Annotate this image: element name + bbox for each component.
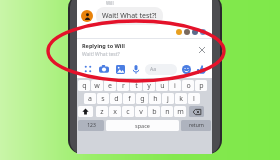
staticText: s: [101, 94, 105, 104]
staticText: c: [126, 107, 130, 117]
button[interactable]: t: [130, 80, 142, 91]
button[interactable]: Send like: [194, 62, 208, 76]
staticText: w: [94, 81, 100, 91]
staticText: 123: [87, 122, 96, 129]
button[interactable]: x: [109, 106, 121, 117]
staticText: y: [147, 81, 151, 91]
button[interactable]: e: [104, 80, 116, 91]
button[interactable]: Reaction: [176, 29, 182, 35]
staticText: Will: [106, 0, 114, 6]
staticText: o: [186, 81, 191, 91]
staticText: b: [152, 107, 157, 117]
staticText: u: [160, 81, 165, 91]
button[interactable]: n: [161, 106, 173, 117]
button[interactable]: m: [174, 106, 186, 117]
button[interactable]: u: [156, 80, 168, 91]
button[interactable]: d: [110, 93, 122, 104]
button[interactable]: Voice message: [129, 62, 143, 76]
staticText: Wait! What test?: [82, 51, 120, 58]
button[interactable]: a: [84, 93, 96, 104]
staticText: e: [108, 81, 112, 91]
button[interactable]: f: [123, 93, 135, 104]
staticText: v: [139, 107, 143, 117]
button[interactable]: o: [182, 80, 194, 91]
button[interactable]: y: [143, 80, 155, 91]
button[interactable]: p: [195, 80, 207, 91]
staticText: space: [135, 122, 150, 129]
button[interactable]: l: [188, 93, 200, 104]
staticText: n: [165, 107, 170, 117]
button[interactable]: s: [97, 93, 109, 104]
staticText: l: [193, 94, 195, 104]
button[interactable]: Shift: [78, 106, 93, 117]
staticText: m: [177, 107, 184, 117]
button[interactable]: q: [78, 80, 90, 91]
button[interactable]: j: [162, 93, 174, 104]
staticText: j: [167, 94, 169, 104]
button[interactable]: Wait! What test?!: [96, 7, 163, 25]
staticText: r: [122, 81, 125, 91]
staticText: f: [128, 94, 131, 104]
button[interactable]: v: [135, 106, 147, 117]
staticText: x: [113, 107, 117, 117]
button[interactable]: Stickers: [179, 62, 193, 76]
staticText: return: [189, 122, 204, 129]
staticText: h: [153, 94, 158, 104]
button[interactable]: z: [96, 106, 108, 117]
button[interactable]: return: [181, 120, 211, 131]
button[interactable]: Reaction: [200, 29, 206, 35]
staticText: p: [199, 81, 204, 91]
staticText: q: [82, 81, 87, 91]
staticText: Aa: [150, 66, 157, 73]
button[interactable]: w: [91, 80, 103, 91]
button[interactable]: Aa: [145, 64, 177, 75]
button[interactable]: More apps: [81, 62, 95, 76]
button[interactable]: i: [169, 80, 181, 91]
button[interactable]: Camera: [97, 62, 111, 76]
staticText: Wait! What test?!: [102, 11, 157, 21]
button[interactable]: Reaction: [192, 29, 198, 35]
staticText: k: [179, 94, 183, 104]
button[interactable]: g: [136, 93, 148, 104]
staticText: d: [114, 94, 119, 104]
staticText: a: [88, 94, 92, 104]
staticText: i: [174, 81, 176, 91]
staticText: g: [140, 94, 145, 104]
button[interactable]: Backspace: [189, 106, 204, 117]
staticText: z: [100, 107, 104, 117]
button[interactable]: Will avatar: [81, 10, 93, 22]
staticText: Replying to Will: [82, 42, 125, 49]
button[interactable]: Photos: [113, 62, 127, 76]
staticText: t: [135, 81, 138, 91]
button[interactable]: 123: [78, 120, 104, 131]
button[interactable]: r: [117, 80, 129, 91]
button[interactable]: c: [122, 106, 134, 117]
button[interactable]: h: [149, 93, 161, 104]
button[interactable]: Close reply: [196, 44, 208, 56]
button[interactable]: k: [175, 93, 187, 104]
button[interactable]: b: [148, 106, 160, 117]
button[interactable]: space: [106, 120, 179, 131]
button[interactable]: Reaction: [184, 29, 190, 35]
